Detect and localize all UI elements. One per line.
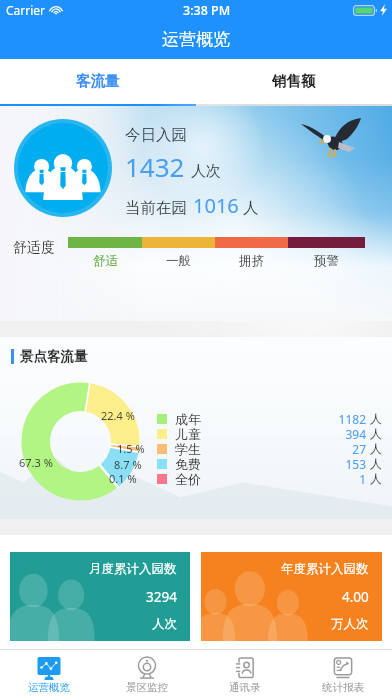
staticText: 3294 xyxy=(146,588,177,606)
staticText: 人 xyxy=(370,471,382,486)
staticText: 免费 xyxy=(175,456,201,471)
staticText: 统计报表 xyxy=(322,681,364,694)
staticText: 运营概览 xyxy=(28,681,70,694)
staticText: 当前在园 xyxy=(125,198,187,218)
button[interactable]: 运营概览 xyxy=(0,650,98,696)
staticText: 394 xyxy=(345,426,366,441)
staticText: 舒适 xyxy=(93,253,118,269)
staticText: 1.5 % xyxy=(117,441,145,456)
staticText: 4.00 xyxy=(342,588,369,606)
staticText: 今日入园 xyxy=(125,125,187,145)
staticText: 运营概览 xyxy=(162,29,230,50)
staticText: 通讯录 xyxy=(229,681,261,694)
staticText: 8.7 % xyxy=(114,457,142,472)
staticText: 153 xyxy=(345,456,366,471)
staticText: 预警 xyxy=(314,253,339,269)
button[interactable]: 景区监控 xyxy=(98,650,196,696)
staticText: 1432 xyxy=(125,149,185,184)
staticText: 0.1 % xyxy=(109,471,137,486)
staticText: 67.3 % xyxy=(19,455,53,470)
staticText: 成年 xyxy=(175,411,201,426)
staticText: 人 xyxy=(370,456,382,471)
staticText: 年度累计入园数 xyxy=(281,561,369,577)
staticText: 销售额 xyxy=(272,72,316,90)
staticText: 1 xyxy=(359,471,366,486)
staticText: 一般 xyxy=(166,253,191,269)
staticText: 人 xyxy=(243,198,259,218)
staticText: 儿童 xyxy=(175,426,201,441)
staticText: 景点客流量 xyxy=(20,348,88,365)
button[interactable]: 年度累计入园数 xyxy=(201,552,382,641)
staticText: 学生 xyxy=(175,441,201,456)
staticText: 客流量 xyxy=(76,72,120,90)
staticText: 1182 xyxy=(338,411,366,426)
staticText: 舒适度 xyxy=(13,239,55,257)
staticText: 3:38 PM xyxy=(183,2,231,19)
staticText: Carrier xyxy=(6,2,46,18)
staticText: 人 xyxy=(370,441,382,456)
button[interactable]: 通讯录 xyxy=(196,650,294,696)
staticText: 人次 xyxy=(152,616,177,632)
staticText: 景区监控 xyxy=(126,681,168,694)
staticText: 拥挤 xyxy=(239,253,264,269)
staticText: 人 xyxy=(370,426,382,441)
button[interactable]: 客流量 xyxy=(0,59,196,106)
staticText: 月度累计入园数 xyxy=(89,561,177,577)
staticText: 1016 xyxy=(193,192,239,219)
button[interactable]: 统计报表 xyxy=(294,650,392,696)
staticText: 全价 xyxy=(175,471,201,486)
staticText: 27 xyxy=(352,441,366,456)
staticText: 22.4 % xyxy=(101,408,135,423)
staticText: 人次 xyxy=(191,162,221,181)
button[interactable]: 月度累计入园数 xyxy=(10,552,190,641)
staticText: 人 xyxy=(370,411,382,426)
staticText: 万人次 xyxy=(331,616,369,632)
button[interactable]: 销售额 xyxy=(196,59,392,106)
